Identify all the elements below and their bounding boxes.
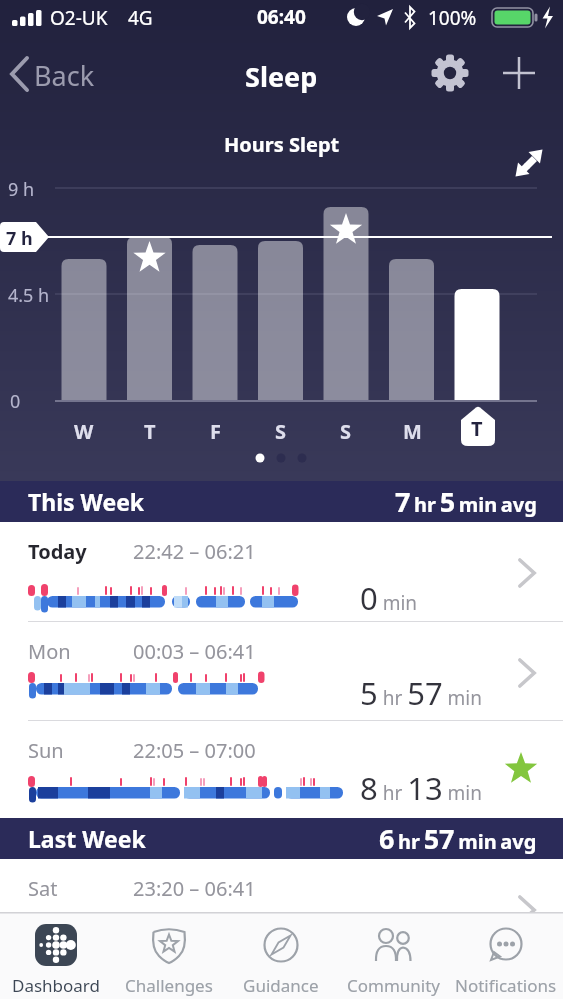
staticText: W bbox=[74, 418, 94, 445]
staticText: Back bbox=[34, 57, 95, 94]
staticText: 0 bbox=[10, 389, 21, 414]
staticText: Mon bbox=[28, 638, 71, 665]
staticText: 5 hr 57 min bbox=[360, 672, 483, 714]
staticText: Today bbox=[28, 538, 87, 565]
staticText: Dashboard bbox=[12, 974, 101, 997]
button[interactable]: Notifications bbox=[450, 912, 562, 999]
staticText: S bbox=[275, 418, 287, 445]
staticText: 8 hr 13 min bbox=[360, 767, 483, 809]
staticText: O2-UK bbox=[50, 5, 108, 31]
staticText: 23:20 – 06:41 bbox=[133, 875, 256, 902]
staticText: 7 hr 5 min avg bbox=[395, 483, 537, 520]
button[interactable]: Mon bbox=[0, 622, 563, 720]
staticText: This Week bbox=[28, 486, 145, 517]
button[interactable]: Challenges bbox=[113, 912, 225, 999]
staticText: Guidance bbox=[243, 974, 319, 997]
staticText: Last Week bbox=[28, 823, 146, 854]
staticText: M bbox=[403, 418, 422, 445]
staticText: Challenges bbox=[125, 974, 213, 997]
staticText: 06:40 bbox=[257, 4, 306, 30]
staticText: 100% bbox=[428, 5, 477, 31]
staticText: F bbox=[210, 418, 221, 445]
staticText: Sat bbox=[28, 875, 58, 902]
staticText: T bbox=[471, 415, 483, 442]
button[interactable]: Today bbox=[0, 522, 563, 621]
staticText: 7 h bbox=[6, 226, 33, 251]
staticText: 4G bbox=[128, 5, 153, 31]
staticText: S bbox=[340, 418, 352, 445]
staticText: 9 h bbox=[8, 177, 35, 202]
button[interactable] bbox=[428, 51, 472, 95]
staticText: Sun bbox=[28, 737, 64, 764]
button[interactable]: Sat bbox=[0, 859, 563, 912]
staticText: 0 min bbox=[360, 577, 418, 619]
staticText: Notifications bbox=[455, 974, 557, 997]
staticText: 22:42 – 06:21 bbox=[133, 538, 256, 565]
staticText: Community bbox=[347, 974, 441, 997]
staticText: Hours Slept bbox=[224, 131, 340, 158]
staticText: 6 hr 57 min avg bbox=[379, 820, 537, 857]
button[interactable]: Sun bbox=[0, 721, 563, 818]
button[interactable]: Back bbox=[8, 52, 118, 96]
staticText: 22:05 – 07:00 bbox=[133, 737, 256, 764]
button[interactable]: Community bbox=[338, 912, 450, 999]
staticText: T bbox=[144, 418, 156, 445]
staticText: Sleep bbox=[245, 58, 318, 95]
button[interactable] bbox=[497, 51, 541, 95]
button[interactable]: Dashboard bbox=[0, 912, 112, 999]
button[interactable]: Guidance bbox=[225, 912, 337, 999]
staticText: 00:03 – 06:41 bbox=[133, 638, 256, 665]
staticText: 4.5 h bbox=[8, 283, 50, 308]
